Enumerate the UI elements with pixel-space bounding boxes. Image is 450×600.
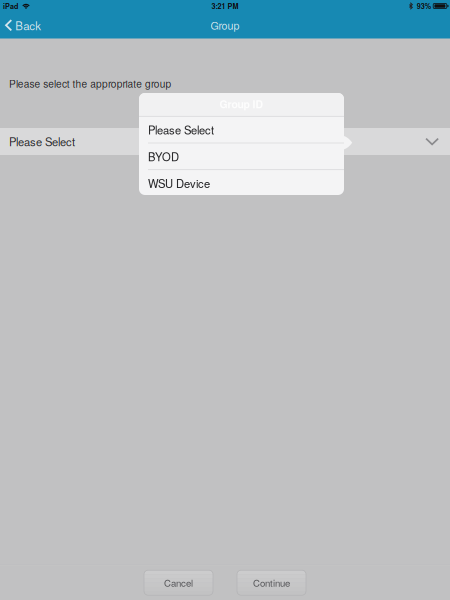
staticText: WSU Device	[148, 175, 210, 191]
staticText: iPad	[3, 1, 18, 11]
staticText: BYOD	[148, 148, 179, 164]
staticText: Back	[15, 17, 41, 33]
staticText: 3:21 PM	[211, 1, 238, 11]
button[interactable]: BYOD	[139, 143, 344, 169]
staticText: Group ID	[219, 96, 263, 111]
button[interactable]: Please Select	[139, 117, 344, 143]
button[interactable]: WSU Device	[139, 170, 344, 196]
button[interactable]: Back	[0, 12, 47, 38]
staticText: Continue	[253, 576, 290, 589]
staticText: Please select the appropriate group	[9, 76, 172, 90]
staticText: Cancel	[164, 576, 193, 589]
staticText: 93%	[417, 1, 431, 11]
button[interactable]: Continue	[237, 570, 306, 595]
staticText: Group	[210, 18, 239, 33]
button[interactable]: Cancel	[144, 570, 213, 595]
button[interactable]: Please Select	[0, 128, 450, 155]
staticText: Please Select	[148, 122, 214, 138]
staticText: Please Select	[9, 133, 75, 149]
